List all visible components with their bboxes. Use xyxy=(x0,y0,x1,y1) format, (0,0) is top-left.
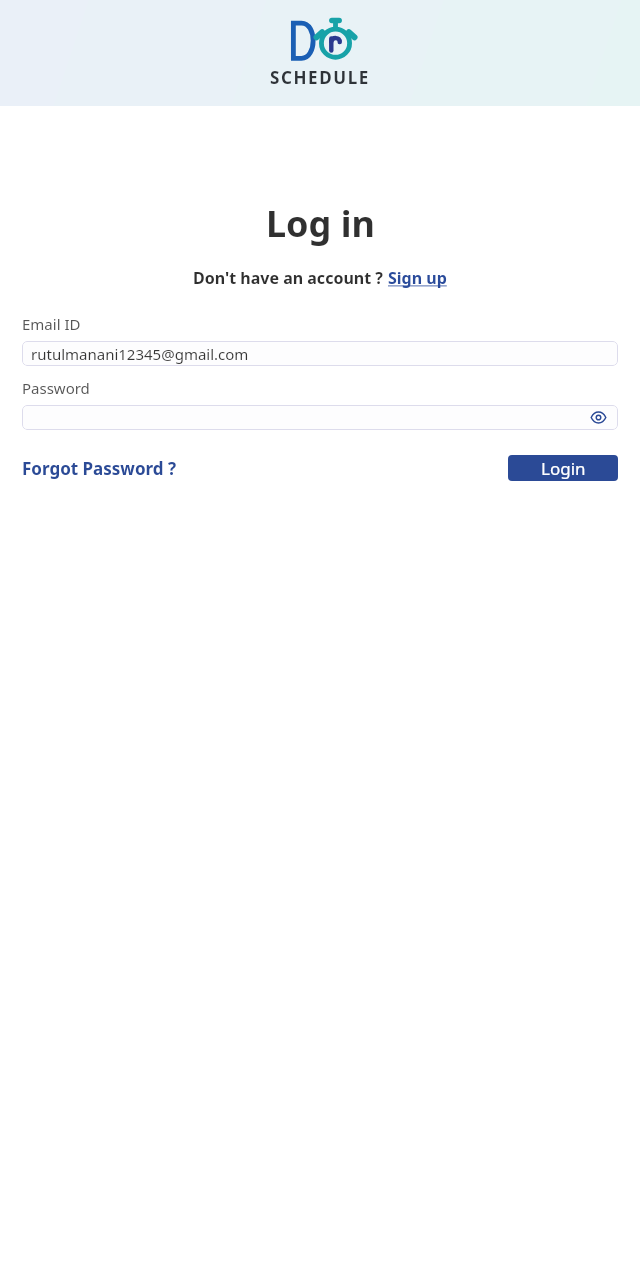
button[interactable]: rutulmanani12345@gmail.com xyxy=(22,341,618,366)
button[interactable]: Login xyxy=(508,455,618,481)
staticText: Password xyxy=(22,378,90,398)
staticText: rutulmanani12345@gmail.com xyxy=(31,344,249,364)
staticText: Sign up xyxy=(388,267,447,289)
staticText: Log in xyxy=(266,199,375,248)
button[interactable]: Forgot Password ? xyxy=(22,457,177,480)
button[interactable]: Show password xyxy=(590,409,607,426)
staticText: SCHEDULE xyxy=(270,66,370,89)
staticText: Forgot Password ? xyxy=(22,457,177,480)
staticText: Email ID xyxy=(22,314,81,334)
button[interactable]: Show password xyxy=(22,405,618,430)
button[interactable]: Sign up xyxy=(388,267,447,289)
staticText: Login xyxy=(541,457,586,480)
staticText: Don't have an account ? xyxy=(193,267,388,289)
